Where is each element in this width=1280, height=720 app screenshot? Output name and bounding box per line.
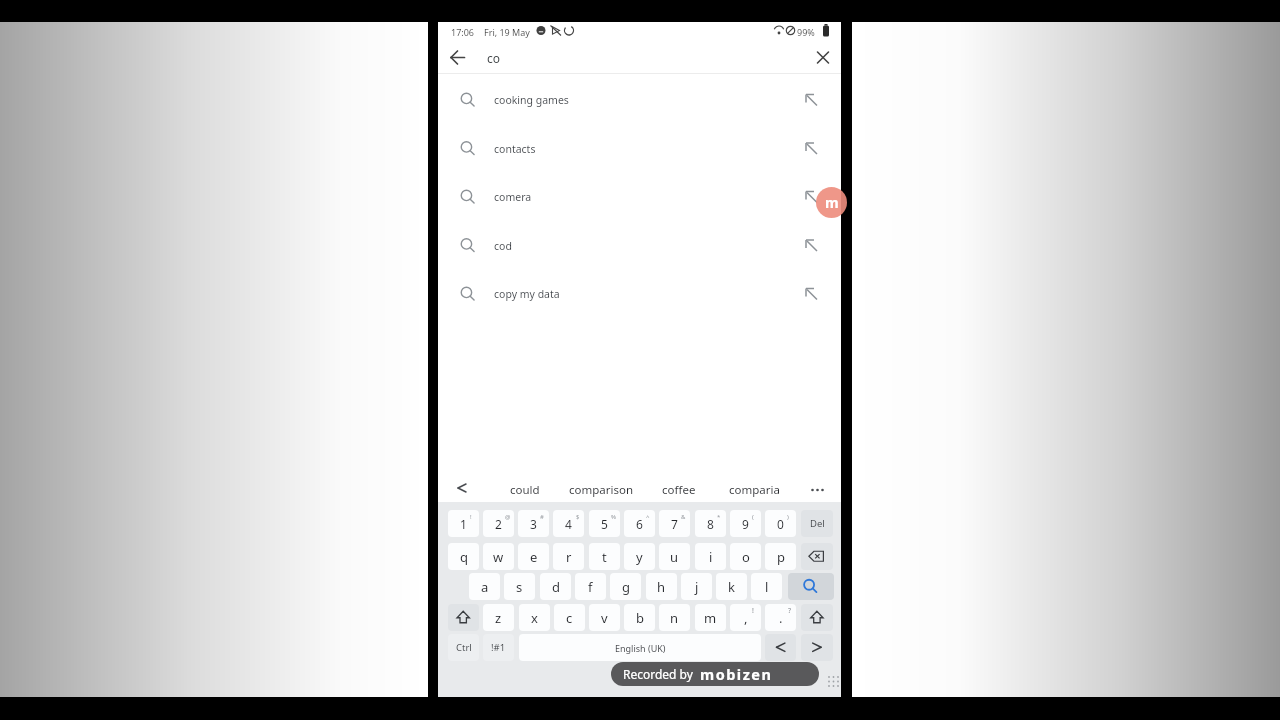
staticText: x (531, 609, 538, 627)
staticText: j (695, 578, 699, 596)
staticText: u (670, 548, 679, 566)
staticText: c (566, 609, 573, 627)
staticText: 4 (565, 516, 572, 532)
staticText: !#1 (491, 641, 506, 654)
staticText: . (779, 609, 783, 627)
staticText: f (588, 578, 593, 596)
staticText: s (516, 578, 523, 596)
staticText: cod (494, 239, 512, 253)
staticText: $ (576, 513, 580, 521)
staticText: 1 (460, 516, 467, 532)
staticText: * (717, 513, 721, 521)
staticText: r (566, 548, 572, 566)
staticText: coffee (662, 482, 696, 498)
staticText: p (777, 548, 785, 566)
staticText: ^ (646, 513, 650, 521)
staticText: 6 (636, 516, 643, 532)
staticText: # (540, 513, 544, 521)
staticText: m (825, 193, 839, 212)
staticText: Recorded by (623, 666, 693, 682)
staticText: % (611, 513, 616, 521)
staticText: 3 (530, 516, 537, 532)
staticText: 99% (797, 26, 815, 38)
staticText: contacts (494, 142, 536, 156)
staticText: d (552, 578, 560, 596)
staticText: l (765, 578, 769, 596)
staticText: , (744, 609, 748, 627)
staticText: o (742, 548, 750, 566)
staticText: b (636, 609, 644, 627)
staticText: English (UK) (615, 642, 666, 654)
staticText: ! (470, 513, 472, 521)
staticText: ! (752, 606, 754, 616)
staticText: i (709, 548, 713, 566)
staticText: h (657, 578, 666, 596)
staticText: Del (810, 517, 825, 530)
staticText: g (622, 578, 630, 596)
staticText: copy my data (494, 287, 560, 301)
staticText: n (670, 609, 679, 627)
staticText: ? (788, 606, 792, 616)
staticText: cooking games (494, 93, 569, 107)
staticText: 8 (707, 516, 714, 532)
staticText: 0 (777, 516, 784, 532)
staticText: 2 (495, 516, 502, 532)
staticText: & (681, 513, 686, 521)
staticText: @ (505, 513, 511, 521)
staticText: 17:06 (451, 26, 475, 38)
staticText: 7 (671, 516, 678, 532)
staticText: w (493, 548, 504, 566)
staticText: could (510, 482, 540, 498)
staticText: m (704, 609, 717, 627)
staticText: mobizen (700, 664, 773, 684)
staticText: t (602, 548, 607, 566)
staticText: a (481, 578, 489, 596)
staticText: y (636, 548, 643, 566)
staticText: e (530, 548, 538, 566)
staticText: Fri, 19 May (484, 26, 530, 38)
staticText: ( (752, 513, 754, 521)
staticText: z (495, 609, 502, 627)
staticText: comparia (729, 482, 780, 498)
staticText: k (728, 578, 735, 596)
staticText: ) (787, 513, 789, 521)
staticText: 9 (742, 516, 749, 532)
staticText: comera (494, 190, 532, 204)
staticText: 5 (601, 516, 608, 532)
staticText: co (487, 50, 501, 66)
staticText: comparison (569, 482, 634, 498)
staticText: q (460, 548, 468, 566)
staticText: v (601, 609, 608, 627)
staticText: Ctrl (456, 641, 472, 654)
